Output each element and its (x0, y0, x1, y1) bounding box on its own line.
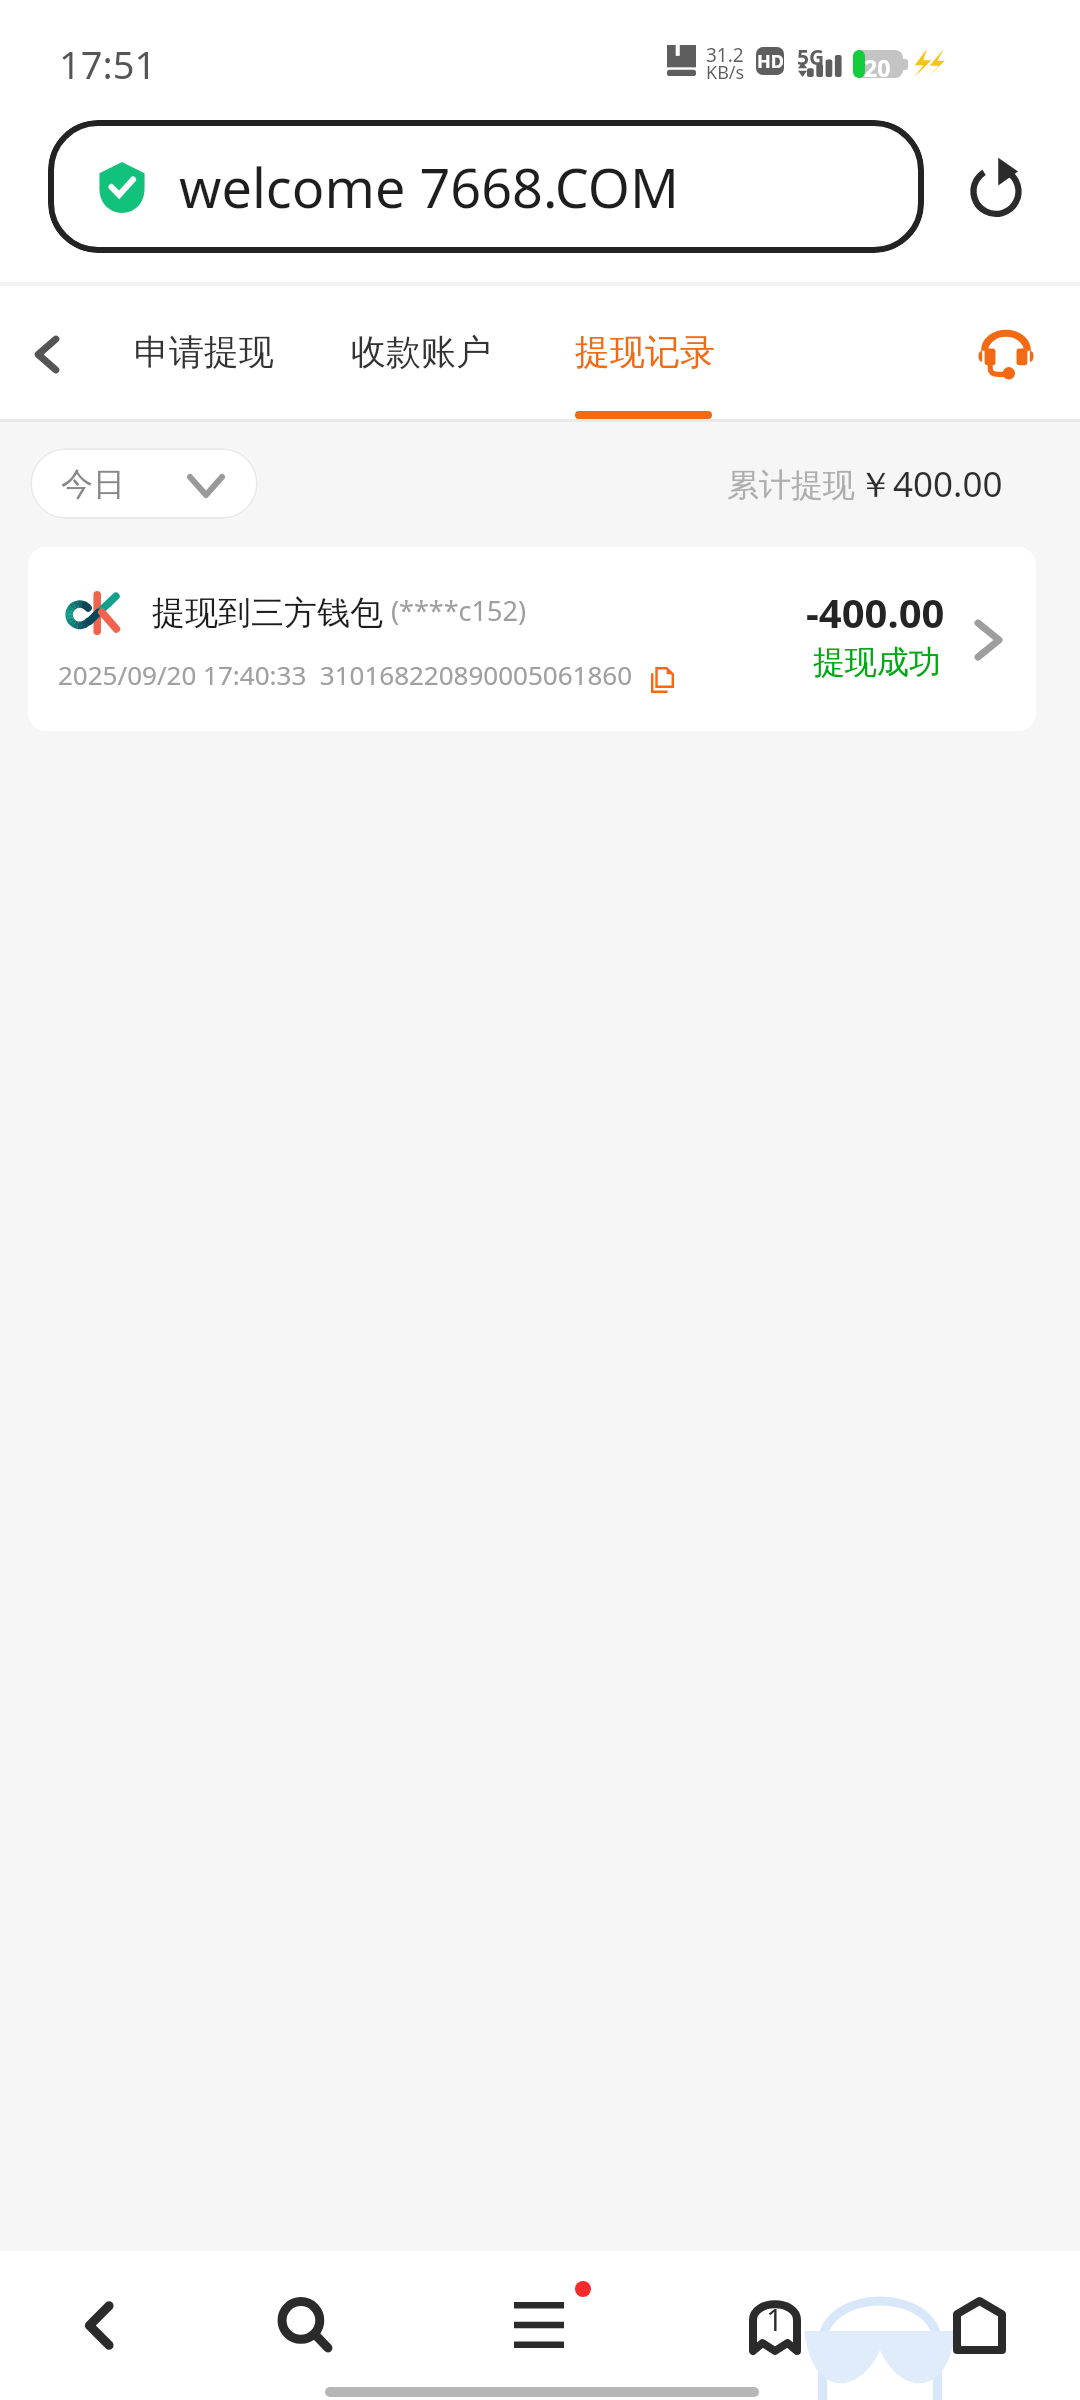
staticText: ￥400.00 (858, 460, 1003, 508)
staticText: 31.2 (706, 42, 744, 68)
staticText: 提现到三方钱包 (152, 592, 383, 634)
button[interactable]: 提现到三方钱包 (28, 547, 1036, 731)
staticText: 今日 (61, 464, 125, 504)
staticText: welcome 7668.COM (179, 150, 679, 224)
button[interactable]: Tabs (720, 2270, 830, 2380)
button[interactable]: Back (6, 313, 88, 395)
button[interactable]: Home (924, 2270, 1034, 2380)
staticText: 17:51 (59, 38, 157, 90)
button[interactable]: Reload (955, 148, 1037, 230)
staticText: 收款账户 (351, 330, 491, 374)
staticText: HD (757, 49, 784, 74)
staticText: 5G (797, 43, 825, 72)
staticText: 申请提现 (134, 330, 274, 374)
button[interactable]: Menu (484, 2270, 594, 2380)
button[interactable]: 今日 (30, 448, 258, 519)
staticText: KB/s (706, 60, 745, 85)
button[interactable]: Back (44, 2270, 154, 2380)
button[interactable]: Search (250, 2270, 360, 2380)
button[interactable]: welcome 7668.COM (48, 120, 924, 253)
button[interactable]: 申请提现 (134, 286, 274, 422)
button[interactable]: 收款账户 (351, 286, 491, 422)
staticText: 提现记录 (575, 330, 715, 374)
staticText: -400.00 (806, 585, 945, 639)
staticText: 累计提现 (727, 465, 855, 505)
staticText: 1 (766, 2299, 784, 2340)
staticText: 20 (864, 52, 891, 83)
button[interactable]: 提现记录 (575, 286, 715, 422)
button[interactable]: Customer service (962, 309, 1050, 399)
staticText: 2025/09/20 17:40:33 31016822089000506186… (58, 657, 633, 692)
staticText: 提现成功 (813, 642, 941, 682)
staticText: (****c152) (391, 592, 526, 629)
